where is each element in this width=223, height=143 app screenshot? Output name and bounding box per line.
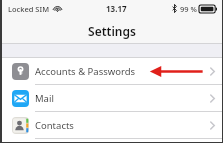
staticText: Mail bbox=[35, 92, 54, 105]
staticText: Locked SIM bbox=[8, 4, 50, 14]
staticText: Settings bbox=[88, 23, 136, 39]
staticText: Contacts bbox=[35, 119, 74, 132]
staticText: Accounts & Passwords bbox=[35, 65, 136, 78]
button[interactable]: Accounts & Passwords bbox=[2, 58, 222, 85]
button[interactable]: Contacts bbox=[2, 112, 222, 139]
button[interactable]: Mail bbox=[2, 85, 222, 112]
staticText: 13.17 bbox=[106, 3, 127, 14]
staticText: 99 % bbox=[180, 4, 197, 14]
